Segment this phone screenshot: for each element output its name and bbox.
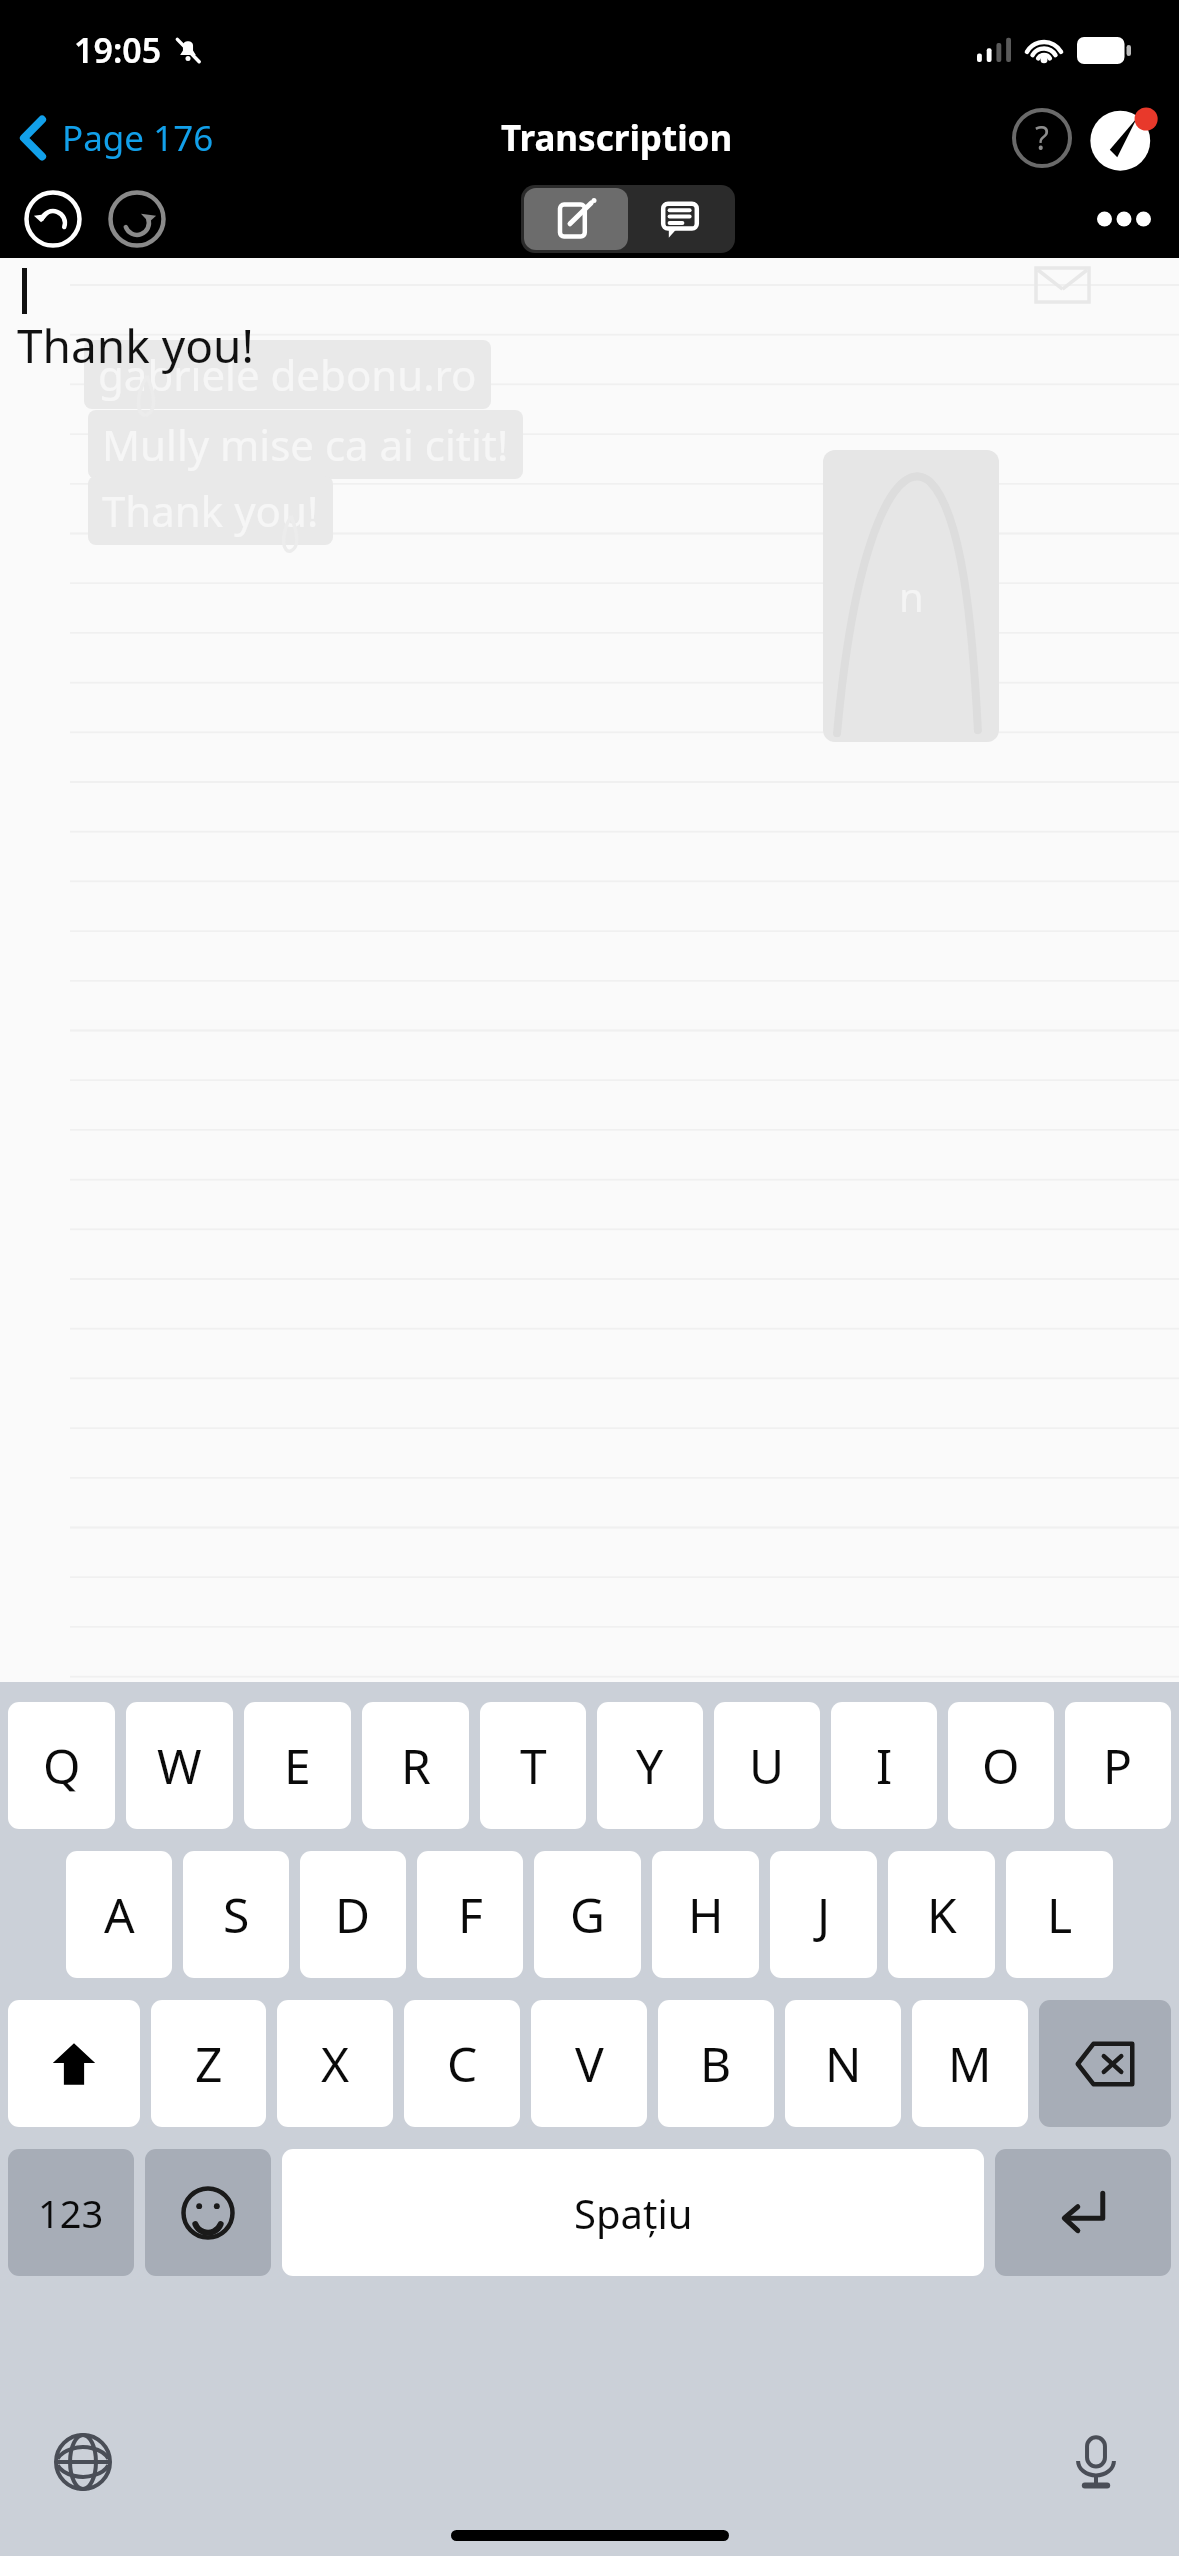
button[interactable]: U — [714, 1702, 820, 1829]
staticText: V — [575, 2031, 604, 2096]
staticText: I — [876, 1733, 893, 1798]
button[interactable]: X — [277, 2000, 393, 2127]
button[interactable]: C — [404, 2000, 520, 2127]
button[interactable]: B — [658, 2000, 774, 2127]
button[interactable]: Dictate — [1059, 2425, 1133, 2499]
button[interactable]: Shift — [8, 2000, 140, 2127]
staticText: Spațiu — [574, 2186, 693, 2240]
button[interactable]: Transcript — [628, 188, 732, 250]
staticText: T — [520, 1733, 547, 1798]
staticText: 19:05 — [74, 27, 162, 73]
staticText: B — [700, 2031, 732, 2096]
button[interactable]: Change language — [46, 2425, 120, 2499]
button[interactable]: Page 176 — [0, 96, 226, 180]
button[interactable]: Help — [1009, 105, 1075, 171]
staticText: Z — [195, 2031, 223, 2096]
staticText: F — [458, 1882, 483, 1947]
staticText: 123 — [38, 2187, 104, 2239]
button[interactable]: Q — [8, 1702, 115, 1829]
staticText: Transcription — [501, 114, 733, 162]
staticText: Thank you! — [102, 482, 319, 539]
button[interactable]: Emoji — [145, 2149, 271, 2276]
button[interactable]: S — [183, 1851, 289, 1978]
staticText: P — [1103, 1733, 1133, 1798]
button[interactable]: P — [1065, 1702, 1171, 1829]
staticText: J — [817, 1882, 831, 1947]
staticText: O — [982, 1733, 1020, 1798]
button[interactable]: F — [417, 1851, 523, 1978]
staticText: n — [899, 569, 924, 623]
staticText: A — [104, 1882, 135, 1947]
button[interactable]: Undo — [18, 184, 88, 254]
staticText: E — [284, 1733, 311, 1798]
button[interactable]: D — [300, 1851, 406, 1978]
staticText: Q — [43, 1733, 81, 1798]
button[interactable]: More options — [1085, 180, 1163, 258]
button[interactable]: Pen settings — [1089, 104, 1157, 172]
button[interactable]: R — [362, 1702, 469, 1829]
button[interactable]: O — [948, 1702, 1054, 1829]
staticText: Mully mise ca ai citit! — [102, 416, 509, 473]
staticText: ? — [1035, 116, 1049, 160]
staticText: K — [927, 1882, 957, 1947]
staticText: Y — [636, 1733, 664, 1798]
staticText: H — [688, 1882, 724, 1947]
button[interactable]: J — [770, 1851, 877, 1978]
button[interactable]: E — [244, 1702, 351, 1829]
button[interactable]: M — [912, 2000, 1028, 2127]
staticText: L — [1047, 1882, 1073, 1947]
button[interactable]: Redo — [102, 184, 172, 254]
button[interactable]: Draw — [524, 188, 628, 250]
button[interactable]: V — [531, 2000, 647, 2127]
button[interactable]: Z — [151, 2000, 266, 2127]
button[interactable]: K — [888, 1851, 995, 1978]
button[interactable]: Return — [995, 2149, 1171, 2276]
staticText: S — [223, 1882, 250, 1947]
staticText: C — [447, 2031, 478, 2096]
button[interactable]: 123 — [8, 2149, 134, 2276]
button[interactable]: A — [66, 1851, 172, 1978]
button[interactable]: I — [831, 1702, 937, 1829]
button[interactable]: G — [534, 1851, 641, 1978]
staticText: D — [335, 1882, 371, 1947]
button[interactable]: W — [126, 1702, 233, 1829]
staticText: gabriele debonu.ro — [98, 346, 477, 403]
staticText: N — [825, 2031, 862, 2096]
staticText: Page 176 — [62, 114, 214, 162]
button[interactable]: Backspace — [1039, 2000, 1171, 2127]
staticText: X — [321, 2031, 350, 2096]
button[interactable]: T — [480, 1702, 586, 1829]
button[interactable]: Spațiu — [282, 2149, 984, 2276]
button[interactable]: N — [785, 2000, 901, 2127]
button[interactable]: Y — [597, 1702, 703, 1829]
button[interactable]: L — [1006, 1851, 1113, 1978]
staticText: Thank you! — [17, 314, 254, 377]
staticText: R — [401, 1733, 431, 1798]
staticText: W — [157, 1733, 202, 1798]
staticText: U — [749, 1733, 785, 1798]
button[interactable]: H — [652, 1851, 759, 1978]
staticText: G — [570, 1882, 605, 1947]
staticText: M — [948, 2031, 992, 2096]
